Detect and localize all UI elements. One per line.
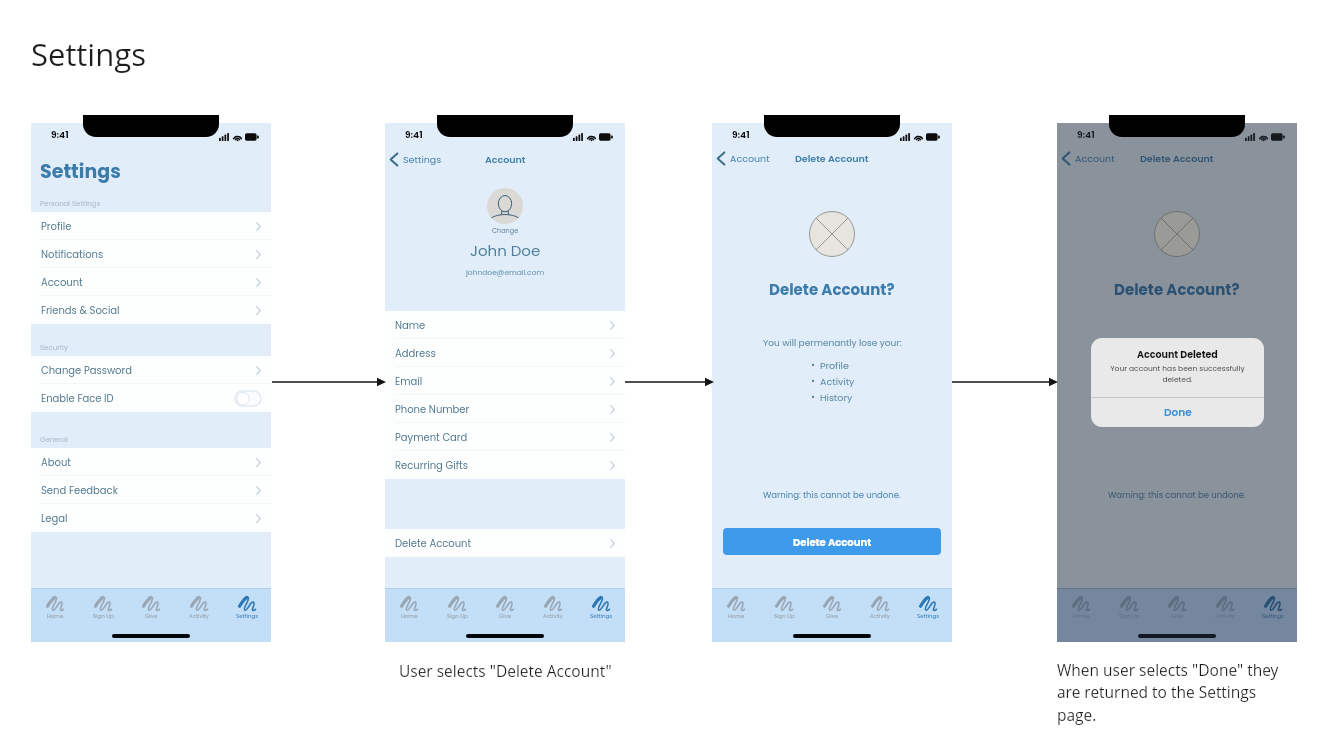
staticText: Personal Settings: [40, 199, 101, 209]
button[interactable]: Legal: [31, 504, 271, 532]
button[interactable]: Back to Account: [1062, 152, 1115, 165]
staticText: 9:41: [405, 129, 423, 142]
staticText: Delete Account?: [1114, 279, 1240, 300]
button[interactable]: Sign Up: [1105, 592, 1153, 625]
staticText: Change Password: [41, 363, 132, 377]
staticText: Security: [40, 343, 68, 353]
staticText: Account: [1075, 152, 1115, 165]
staticText: Email: [395, 374, 423, 388]
button[interactable]: Give: [481, 592, 529, 625]
staticText: Settings: [590, 612, 613, 620]
staticText: Home: [728, 612, 745, 620]
staticText: Delete Account: [395, 536, 472, 550]
staticText: Account: [41, 275, 83, 289]
staticText: Warning: this cannot be undone.: [1108, 489, 1246, 501]
staticText: John Doe: [470, 240, 541, 261]
staticText: Give: [826, 612, 839, 620]
staticText: About: [41, 455, 71, 469]
staticText: Your account has been successfully delet…: [1103, 363, 1252, 385]
staticText: Account Deleted: [1137, 348, 1218, 361]
button[interactable]: Delete Account: [723, 528, 941, 555]
button[interactable]: Home: [712, 592, 760, 625]
button[interactable]: Friends & Social: [31, 296, 271, 324]
staticText: History: [820, 391, 853, 404]
staticText: Notifications: [41, 247, 104, 261]
staticText: Settings: [403, 153, 442, 166]
staticText: User selects "Delete Account": [399, 660, 612, 681]
button[interactable]: Profile: [31, 212, 271, 240]
staticText: Give: [145, 612, 158, 620]
button[interactable]: Settings: [904, 592, 952, 625]
button[interactable]: Activity: [1201, 592, 1249, 625]
staticText: Home: [401, 612, 418, 620]
staticText: Recurring Gifts: [395, 458, 468, 472]
button[interactable]: Activity: [529, 592, 577, 625]
staticText: Sign Up: [1119, 612, 1140, 620]
staticText: Activity: [1215, 612, 1235, 620]
button[interactable]: Notifications: [31, 240, 271, 268]
button[interactable]: Back to Settings: [390, 153, 442, 166]
button[interactable]: Settings: [1249, 592, 1297, 625]
staticText: Settings: [917, 612, 940, 620]
button[interactable]: Activity: [856, 592, 904, 625]
staticText: Phone Number: [395, 402, 470, 416]
button[interactable]: Give: [127, 592, 175, 625]
staticText: Friends & Social: [41, 303, 120, 317]
button[interactable]: Back to Account: [717, 152, 770, 165]
staticText: Warning: this cannot be undone.: [763, 489, 901, 501]
button[interactable]: Email: [385, 367, 625, 395]
staticText: Sign Up: [93, 612, 114, 620]
button[interactable]: Settings: [577, 592, 625, 625]
staticText: General: [40, 435, 68, 445]
button[interactable]: Give: [808, 592, 856, 625]
button[interactable]: Home: [1057, 592, 1105, 625]
button[interactable]: Account: [31, 268, 271, 296]
staticText: Account: [485, 153, 526, 166]
staticText: Settings: [40, 158, 121, 185]
staticText: Legal: [41, 511, 68, 525]
button[interactable]: Home: [31, 592, 79, 625]
staticText: 9:41: [1077, 129, 1095, 142]
button[interactable]: Activity: [175, 592, 223, 625]
staticText: 9:41: [732, 129, 750, 142]
staticText: Payment Card: [395, 430, 468, 444]
staticText: Give: [1171, 612, 1184, 620]
button[interactable]: Give: [1153, 592, 1201, 625]
button[interactable]: Home: [385, 592, 433, 625]
button[interactable]: Send Feedback: [31, 476, 271, 504]
staticText: johndoe@email.com: [466, 267, 545, 277]
button[interactable]: Settings: [223, 592, 271, 625]
button[interactable]: Change: [492, 226, 519, 235]
staticText: Name: [395, 318, 426, 332]
staticText: Give: [499, 612, 512, 620]
staticText: Delete Account?: [769, 279, 895, 300]
button[interactable]: Phone Number: [385, 395, 625, 423]
staticText: Enable Face ID: [41, 391, 114, 405]
staticText: Activity: [870, 612, 890, 620]
staticText: Delete Account: [1140, 152, 1214, 165]
button[interactable]: Change Password: [31, 356, 271, 384]
button[interactable]: Enable Face ID: [31, 384, 271, 412]
button[interactable]: Done: [1091, 398, 1264, 427]
staticText: Settings: [31, 33, 146, 75]
staticText: Delete Account: [795, 152, 869, 165]
button[interactable]: Address: [385, 339, 625, 367]
button[interactable]: Payment Card: [385, 423, 625, 451]
staticText: Activity: [189, 612, 209, 620]
staticText: Settings: [236, 612, 259, 620]
button[interactable]: Name: [385, 311, 625, 339]
staticText: Home: [1073, 612, 1090, 620]
button[interactable]: Sign Up: [433, 592, 481, 625]
staticText: Profile: [41, 219, 72, 233]
staticText: Address: [395, 346, 436, 360]
button[interactable]: About: [31, 448, 271, 476]
button[interactable]: Delete Account: [385, 529, 625, 557]
button[interactable]: Sign Up: [760, 592, 808, 625]
staticText: Account: [730, 152, 770, 165]
staticText: When user selects "Done" they are return…: [1057, 659, 1281, 725]
staticText: Home: [47, 612, 64, 620]
staticText: Delete Account: [793, 535, 872, 549]
button[interactable]: Sign Up: [79, 592, 127, 625]
button[interactable]: Recurring Gifts: [385, 451, 625, 479]
staticText: Settings: [1262, 612, 1285, 620]
